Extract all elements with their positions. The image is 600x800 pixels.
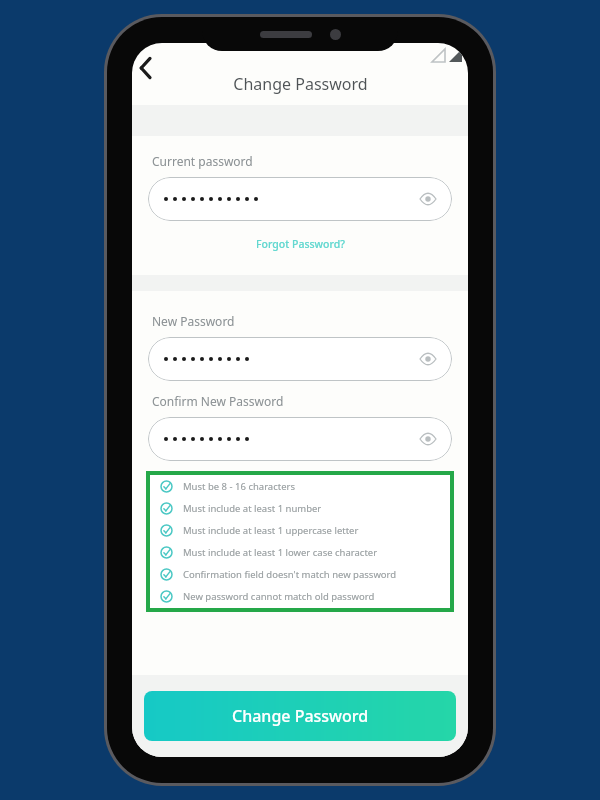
staticText: Change Password bbox=[233, 73, 368, 95]
staticText: Must include at least 1 number bbox=[183, 502, 322, 515]
staticText: Change Password bbox=[232, 705, 369, 727]
button[interactable]: Show password bbox=[416, 427, 440, 451]
button[interactable]: Change Password bbox=[144, 691, 456, 741]
staticText: Confirm New Password bbox=[152, 393, 284, 409]
staticText: Must include at least 1 lower case chara… bbox=[183, 546, 378, 559]
staticText: Forgot Password? bbox=[256, 237, 345, 251]
staticText: Confirmation field doesn't match new pas… bbox=[183, 568, 397, 581]
button[interactable]: Back bbox=[132, 48, 168, 88]
button[interactable]: Show password bbox=[416, 347, 440, 371]
staticText: Current password bbox=[152, 153, 253, 169]
staticText: New Password bbox=[152, 313, 235, 329]
staticText: Must be 8 - 16 characters bbox=[183, 480, 296, 493]
button[interactable]: Show password bbox=[148, 177, 452, 221]
staticText: Must include at least 1 uppercase letter bbox=[183, 524, 359, 537]
button[interactable]: Show password bbox=[148, 337, 452, 381]
button[interactable]: Show password bbox=[148, 417, 452, 461]
button[interactable]: Show password bbox=[416, 187, 440, 211]
staticText: New password cannot match old password bbox=[183, 590, 375, 603]
button[interactable]: Forgot Password? bbox=[250, 235, 351, 253]
